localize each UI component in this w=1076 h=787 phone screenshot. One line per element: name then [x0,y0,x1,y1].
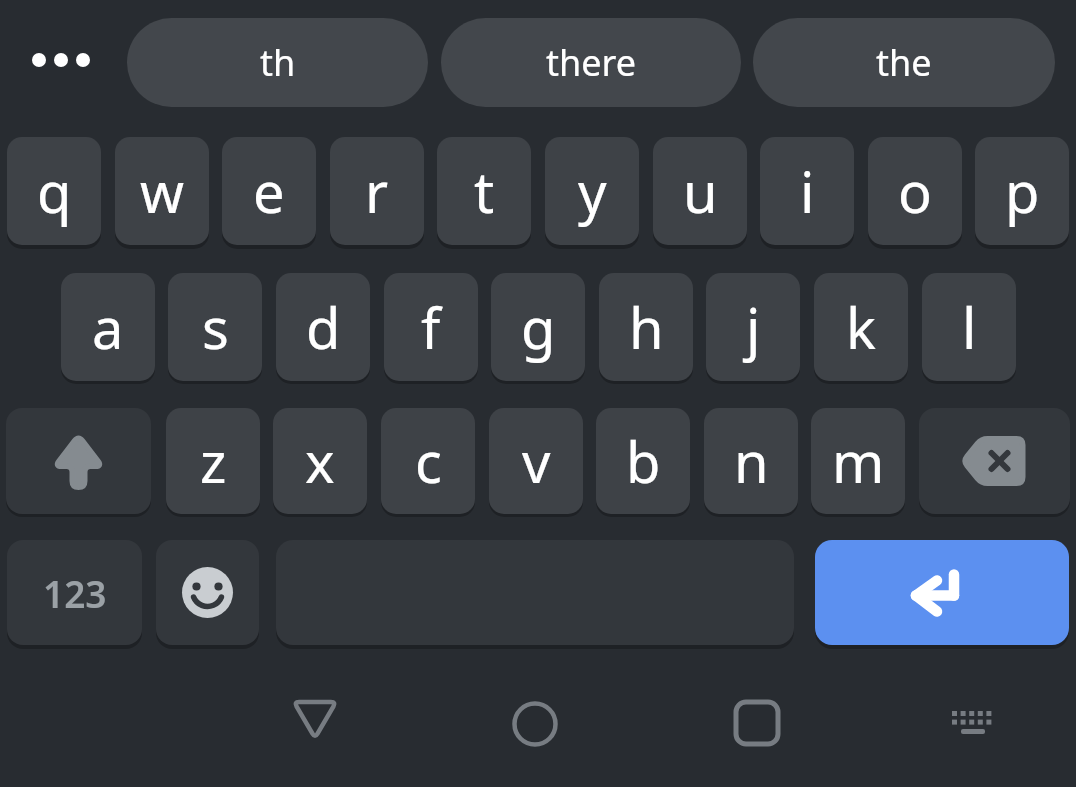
button[interactable]: t [437,137,531,245]
staticText: m [832,423,885,499]
button[interactable] [946,695,1000,749]
staticText: b [626,423,661,499]
staticText: u [683,153,718,229]
button[interactable]: h [599,273,693,381]
button[interactable]: g [491,273,585,381]
staticText: q [37,153,72,229]
button[interactable]: o [868,137,962,245]
button[interactable]: y [545,137,639,245]
staticText: g [521,289,556,365]
button[interactable]: w [115,137,209,245]
button[interactable] [508,697,562,751]
staticText: the [876,38,932,87]
button[interactable]: d [276,273,370,381]
button[interactable] [730,696,784,750]
button[interactable]: there [441,18,741,107]
staticText: v [522,423,551,499]
button[interactable]: v [489,408,583,514]
button[interactable]: th [127,18,428,107]
button[interactable] [22,42,98,78]
staticText: j [746,289,761,365]
staticText: o [898,153,932,229]
staticText: there [546,38,637,87]
staticText: n [734,423,769,499]
staticText: h [629,289,664,365]
button[interactable]: f [384,273,478,381]
button[interactable] [288,693,342,747]
button[interactable]: x [273,408,367,514]
button[interactable]: z [166,408,260,514]
button[interactable] [156,540,259,645]
button[interactable]: k [814,273,908,381]
button[interactable]: p [975,137,1069,245]
staticText: d [306,289,341,365]
staticText: p [1005,153,1040,229]
staticText: x [305,423,335,499]
staticText: k [846,289,876,365]
button[interactable]: m [811,408,905,514]
button[interactable]: 123 [7,540,142,645]
staticText: i [800,153,815,229]
staticText: s [202,289,229,365]
staticText: l [962,289,977,365]
button[interactable] [919,408,1070,514]
button[interactable] [6,408,151,514]
staticText: y [578,153,607,229]
button[interactable]: n [704,408,798,514]
button[interactable] [815,540,1069,645]
button[interactable]: u [653,137,747,245]
button[interactable]: i [760,137,854,245]
button[interactable]: c [381,408,475,514]
staticText: z [200,423,227,499]
button[interactable]: j [706,273,800,381]
button[interactable]: e [222,137,316,245]
staticText: t [474,153,495,229]
staticText: e [253,153,285,229]
staticText: r [365,153,389,229]
button[interactable]: r [330,137,424,245]
staticText: w [140,153,185,229]
staticText: f [421,289,441,365]
staticText: th [260,38,296,87]
staticText: 123 [43,568,107,618]
button[interactable]: b [596,408,690,514]
button[interactable]: the [753,18,1055,107]
button[interactable]: l [922,273,1016,381]
staticText: a [92,289,124,365]
staticText: c [415,423,442,499]
button[interactable]: s [168,273,262,381]
button[interactable]: q [7,137,101,245]
button[interactable]: a [61,273,155,381]
